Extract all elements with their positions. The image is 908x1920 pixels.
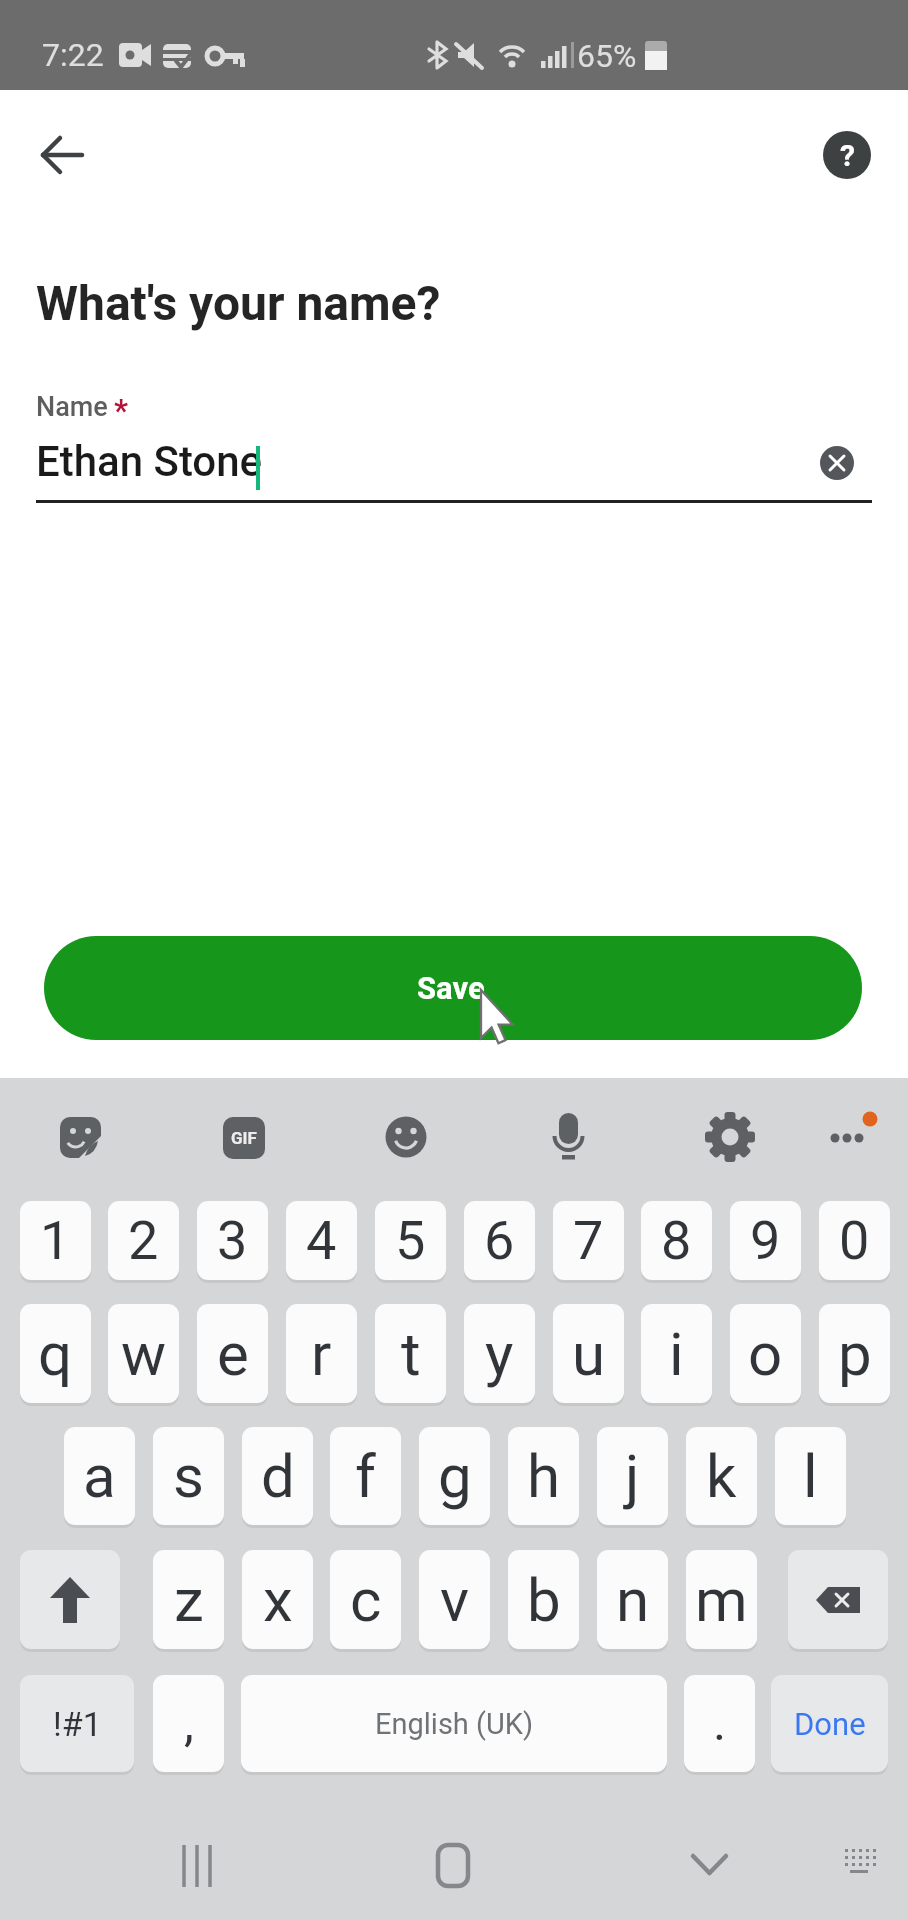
staticText: p xyxy=(838,1319,872,1389)
staticText: 4 xyxy=(306,1209,337,1272)
button[interactable]: ? xyxy=(823,131,871,179)
button[interactable]: s xyxy=(153,1427,224,1525)
button[interactable]: y xyxy=(464,1304,535,1403)
button[interactable] xyxy=(20,1550,120,1649)
button[interactable]: 0 xyxy=(819,1201,890,1280)
staticText: * xyxy=(114,392,129,428)
button[interactable]: Save xyxy=(44,936,862,1040)
button[interactable]: u xyxy=(553,1304,624,1403)
button[interactable]: 8 xyxy=(641,1201,712,1280)
staticText: 6 xyxy=(484,1209,515,1272)
staticText: w xyxy=(121,1319,167,1389)
staticText: English (UK) xyxy=(375,1707,534,1741)
staticText: !#1 xyxy=(53,1704,102,1744)
staticText: v xyxy=(440,1565,470,1635)
button[interactable]: t xyxy=(375,1304,446,1403)
button[interactable]: l xyxy=(775,1427,846,1525)
staticText: e xyxy=(217,1319,249,1389)
button[interactable] xyxy=(788,1550,888,1649)
button[interactable]: GIF xyxy=(223,1117,265,1159)
button[interactable]: English (UK) xyxy=(241,1675,667,1772)
button[interactable]: d xyxy=(242,1427,313,1525)
staticText: GIF xyxy=(231,1128,257,1148)
button[interactable]: a xyxy=(64,1427,135,1525)
staticText: . xyxy=(713,1694,727,1753)
staticText: x xyxy=(263,1565,293,1635)
button[interactable] xyxy=(820,446,854,480)
button[interactable] xyxy=(540,1109,596,1165)
staticText: 7 xyxy=(573,1209,604,1272)
staticText: m xyxy=(695,1565,748,1635)
staticText: ? xyxy=(840,138,855,173)
staticText: t xyxy=(401,1319,421,1389)
button[interactable]: f xyxy=(330,1427,401,1525)
button[interactable]: c xyxy=(330,1550,401,1649)
staticText: n xyxy=(616,1565,650,1635)
staticText: h xyxy=(527,1441,561,1511)
button[interactable]: w xyxy=(108,1304,179,1403)
button[interactable] xyxy=(672,1830,746,1904)
staticText: g xyxy=(438,1441,472,1511)
button[interactable]: 2 xyxy=(108,1201,179,1280)
button[interactable]: e xyxy=(197,1304,268,1403)
button[interactable] xyxy=(820,1109,876,1165)
button[interactable]: 3 xyxy=(197,1201,268,1280)
staticText: What's your name? xyxy=(36,275,441,331)
button[interactable] xyxy=(52,1109,108,1165)
button[interactable] xyxy=(416,1830,490,1904)
button[interactable] xyxy=(26,119,98,191)
button[interactable]: j xyxy=(597,1427,668,1525)
staticText: i xyxy=(669,1319,684,1389)
staticText: 8 xyxy=(661,1209,692,1272)
staticText: 65% xyxy=(577,37,637,75)
button[interactable]: h xyxy=(508,1427,579,1525)
staticText: d xyxy=(261,1441,295,1511)
button[interactable] xyxy=(824,1830,898,1904)
staticText: c xyxy=(350,1565,382,1635)
button[interactable]: k xyxy=(686,1427,757,1525)
button[interactable]: 7 xyxy=(553,1201,624,1280)
button[interactable]: b xyxy=(508,1550,579,1649)
button[interactable]: o xyxy=(730,1304,801,1403)
staticText: o xyxy=(748,1319,783,1389)
button[interactable]: q xyxy=(20,1304,91,1403)
staticText: Name xyxy=(36,391,108,423)
button[interactable]: , xyxy=(153,1675,224,1772)
staticText: 2 xyxy=(128,1209,159,1272)
button[interactable]: m xyxy=(686,1550,757,1649)
button[interactable]: 6 xyxy=(464,1201,535,1280)
button[interactable]: n xyxy=(597,1550,668,1649)
staticText: 9 xyxy=(750,1209,781,1272)
staticText: Save xyxy=(417,970,485,1006)
button[interactable]: x xyxy=(242,1550,313,1649)
staticText: u xyxy=(572,1319,606,1389)
staticText: , xyxy=(184,1694,194,1753)
staticText: 5 xyxy=(395,1209,426,1272)
button[interactable] xyxy=(702,1109,758,1165)
button[interactable]: 1 xyxy=(20,1201,91,1280)
button[interactable]: 4 xyxy=(286,1201,357,1280)
staticText: z xyxy=(174,1565,204,1635)
staticText: r xyxy=(311,1319,332,1389)
button[interactable] xyxy=(378,1109,434,1165)
staticText: q xyxy=(38,1319,73,1389)
button[interactable] xyxy=(160,1830,234,1904)
button[interactable]: !#1 xyxy=(20,1675,134,1772)
button[interactable]: i xyxy=(641,1304,712,1403)
button[interactable]: 5 xyxy=(375,1201,446,1280)
staticText: 1 xyxy=(40,1209,71,1272)
button[interactable]: 9 xyxy=(730,1201,801,1280)
button[interactable]: g xyxy=(419,1427,490,1525)
staticText: k xyxy=(706,1441,737,1511)
staticText: Done xyxy=(794,1706,866,1742)
button[interactable]: v xyxy=(419,1550,490,1649)
button[interactable]: z xyxy=(153,1550,224,1649)
staticText: 7:22 xyxy=(42,36,104,74)
button[interactable]: p xyxy=(819,1304,890,1403)
staticText: 0 xyxy=(839,1209,870,1272)
button[interactable]: . xyxy=(684,1675,755,1772)
button[interactable]: Done xyxy=(771,1675,888,1772)
staticText: Ethan Stone xyxy=(36,437,263,486)
staticText: l xyxy=(803,1441,818,1511)
button[interactable]: r xyxy=(286,1304,357,1403)
